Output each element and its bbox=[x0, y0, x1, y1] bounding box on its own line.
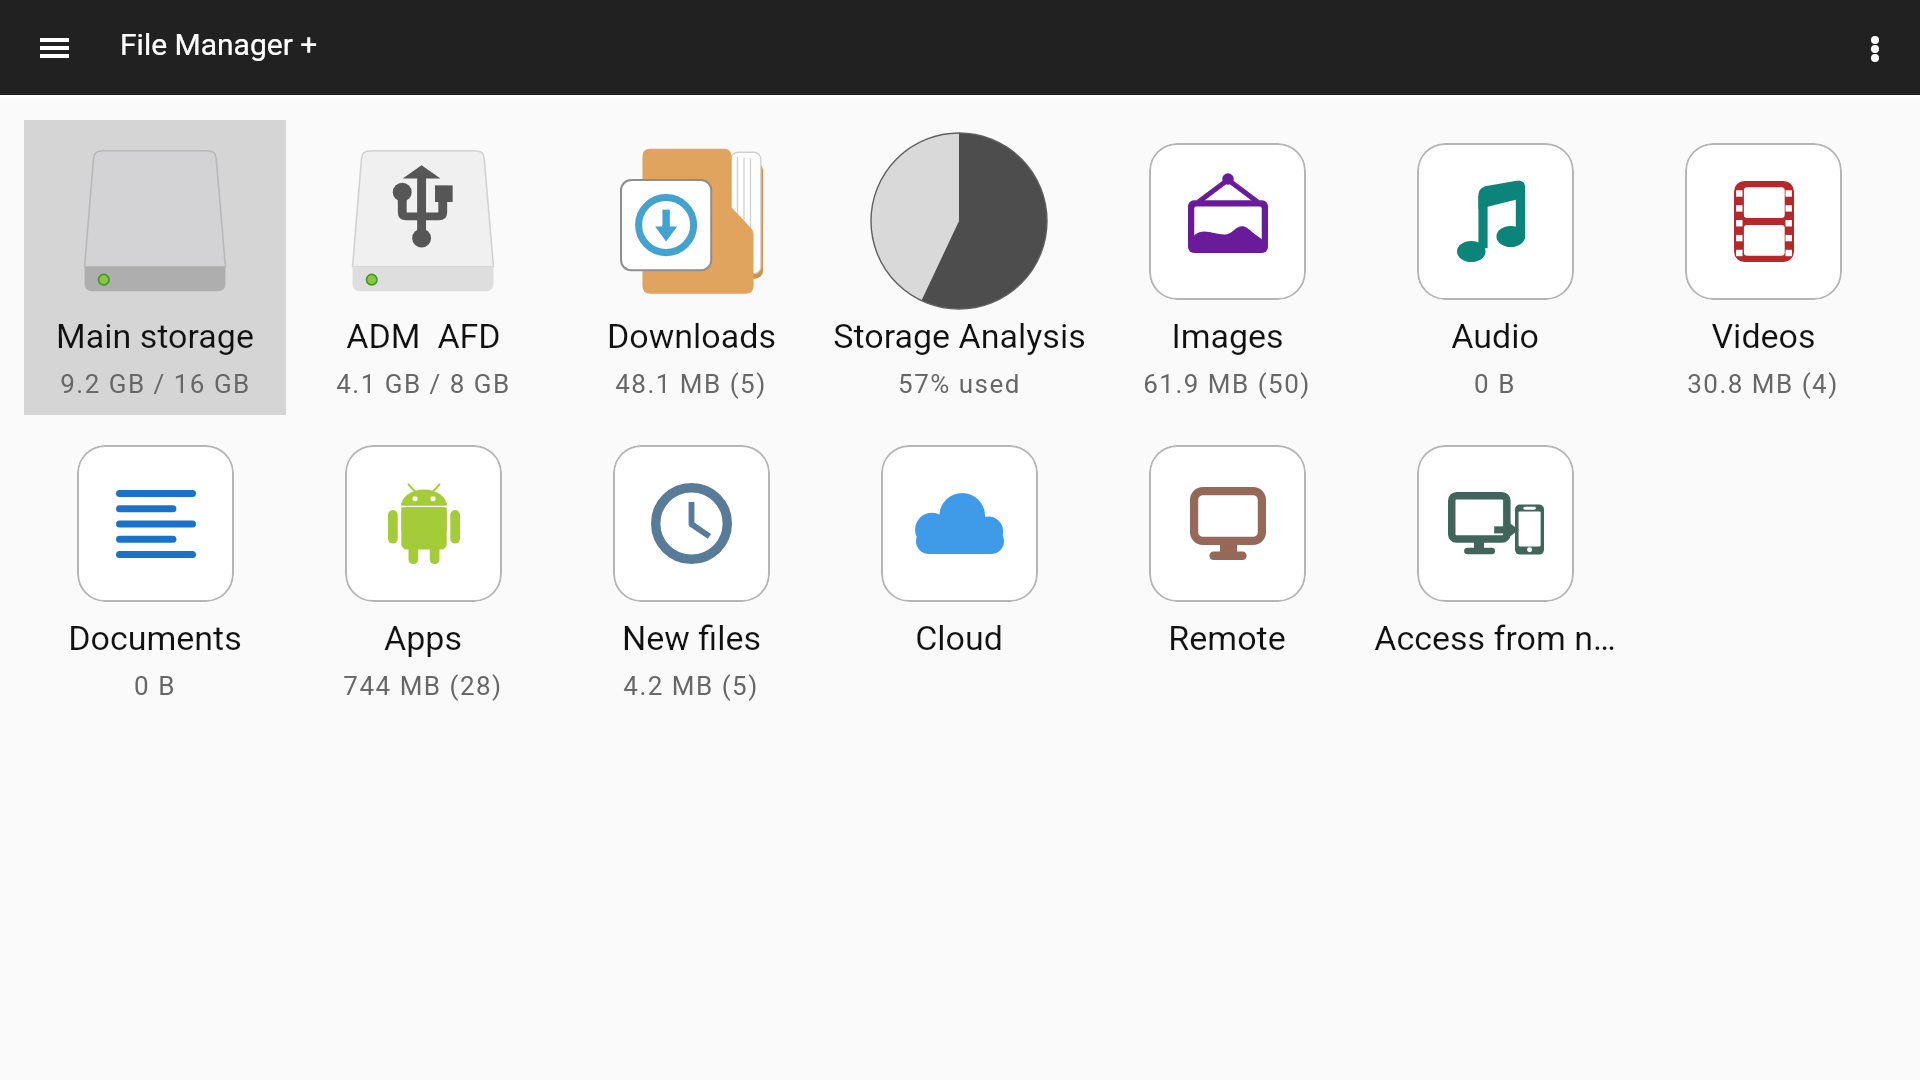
button[interactable]: ADM AFD bbox=[292, 120, 554, 415]
other: Cloud bbox=[881, 445, 1038, 602]
staticText: Videos bbox=[1711, 316, 1816, 356]
staticText: 9.2 GB / 16 GB bbox=[60, 369, 251, 399]
staticText: 57% used bbox=[898, 369, 1021, 399]
staticText: 4.2 MB (5) bbox=[623, 671, 759, 701]
staticText: Downloads bbox=[607, 316, 776, 356]
staticText: Main storage bbox=[56, 316, 254, 356]
other: Documents bbox=[77, 445, 234, 602]
button[interactable]: Open navigation drawer bbox=[14, 0, 94, 95]
other: Access from network bbox=[1417, 445, 1574, 602]
staticText: Remote bbox=[1168, 618, 1286, 658]
staticText: Apps bbox=[384, 618, 462, 658]
other: Audio bbox=[1417, 143, 1574, 300]
button[interactable]: Storage Analysis bbox=[828, 120, 1090, 415]
button[interactable]: Apps bbox=[292, 422, 554, 717]
staticText: 0 B bbox=[134, 671, 176, 701]
staticText: Audio bbox=[1451, 316, 1539, 356]
staticText: ADM AFD bbox=[346, 316, 501, 356]
button[interactable]: Main storage bbox=[24, 120, 286, 415]
button[interactable]: More options bbox=[1844, 0, 1906, 95]
button[interactable]: New files bbox=[560, 422, 822, 717]
button[interactable]: Access from network bbox=[1364, 422, 1626, 717]
staticText: 744 MB (28) bbox=[343, 671, 503, 701]
button[interactable]: Documents bbox=[24, 422, 286, 717]
button[interactable]: Downloads bbox=[560, 120, 822, 415]
other: Remote bbox=[1149, 445, 1306, 602]
staticText: File Manager + bbox=[120, 27, 318, 62]
staticText: Images bbox=[1171, 316, 1284, 356]
other: Apps bbox=[345, 445, 502, 602]
other: Images bbox=[1149, 143, 1306, 300]
staticText: Documents bbox=[68, 618, 242, 658]
button[interactable]: Remote bbox=[1096, 422, 1358, 717]
button[interactable]: Images bbox=[1096, 120, 1358, 415]
other: New files bbox=[613, 445, 770, 602]
button[interactable]: Cloud bbox=[828, 422, 1090, 717]
other: Videos bbox=[1685, 143, 1842, 300]
staticText: 48.1 MB (5) bbox=[615, 369, 767, 399]
staticText: Storage Analysis bbox=[833, 316, 1086, 356]
button[interactable]: Videos bbox=[1632, 120, 1894, 415]
staticText: Access from n… bbox=[1374, 618, 1616, 658]
staticText: 0 B bbox=[1474, 369, 1516, 399]
staticText: 4.1 GB / 8 GB bbox=[336, 369, 511, 399]
staticText: 61.9 MB (50) bbox=[1143, 369, 1311, 399]
staticText: 30.8 MB (4) bbox=[1687, 369, 1839, 399]
staticText: New files bbox=[622, 618, 761, 658]
staticText: Cloud bbox=[915, 618, 1003, 658]
button[interactable]: Audio bbox=[1364, 120, 1626, 415]
